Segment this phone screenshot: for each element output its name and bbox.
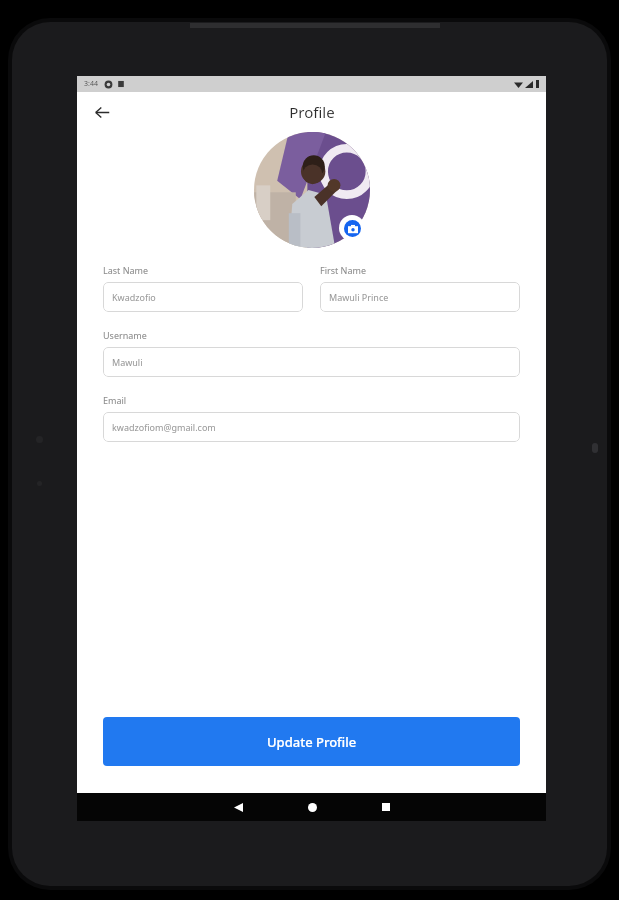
staticText: kwadzofiom@gmail.com <box>112 421 216 433</box>
staticText: Kwadzofio <box>112 291 156 303</box>
button[interactable]: Kwadzofio <box>103 282 303 312</box>
staticText: 3:44 <box>84 79 98 89</box>
button[interactable]: kwadzofiom@gmail.com <box>103 412 520 442</box>
button[interactable]: Change photo <box>344 220 361 237</box>
button[interactable]: Mawuli Prince <box>320 282 520 312</box>
staticText: Username <box>103 329 147 341</box>
button[interactable]: Back <box>85 95 119 129</box>
button[interactable]: Update Profile <box>103 717 520 766</box>
button[interactable]: Back <box>221 793 255 821</box>
staticText: Mawuli <box>112 356 143 368</box>
staticText: Update Profile <box>267 733 357 751</box>
button[interactable]: Recent apps <box>369 793 403 821</box>
staticText: Last Name <box>103 264 149 276</box>
staticText: Profile <box>289 102 335 122</box>
button[interactable]: Profile photo <box>254 132 370 248</box>
button[interactable]: Mawuli <box>103 347 520 377</box>
button[interactable]: Home <box>295 793 329 821</box>
staticText: Mawuli Prince <box>329 291 389 303</box>
staticText: First Name <box>320 264 366 276</box>
staticText: Email <box>103 394 127 406</box>
